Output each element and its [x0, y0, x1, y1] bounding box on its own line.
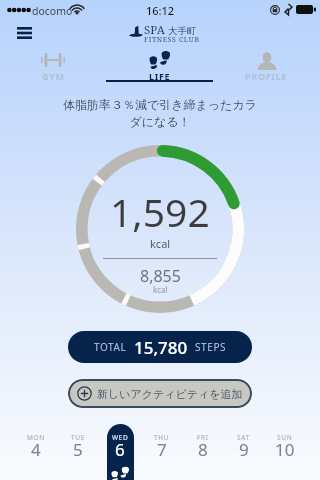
button[interactable]: SUN: [264, 424, 305, 480]
staticText: 7: [157, 438, 167, 461]
staticText: kcal: [150, 236, 171, 251]
button[interactable]: SAT: [223, 424, 264, 480]
staticText: THU: [154, 433, 170, 442]
button[interactable]: TUE: [57, 424, 99, 480]
staticText: GYM: [42, 70, 65, 82]
staticText: 4: [31, 438, 41, 461]
staticText: MON: [27, 433, 46, 442]
button[interactable]: MON: [15, 424, 57, 480]
button[interactable]: LIFE: [106, 46, 213, 82]
staticText: FITNESS CLUB: [144, 35, 200, 45]
button[interactable]: FRI: [182, 424, 223, 480]
staticText: FRI: [197, 433, 209, 442]
button[interactable]: GYM: [0, 46, 106, 82]
staticText: PROFILE: [245, 70, 288, 82]
staticText: docomo: [32, 4, 73, 18]
staticText: SUN: [277, 433, 293, 442]
staticText: kcal: [153, 284, 168, 295]
staticText: 8,855: [140, 265, 181, 287]
staticText: TOTAL: [94, 340, 127, 354]
button[interactable]: TOTAL: [68, 331, 252, 363]
staticText: STEPS: [195, 340, 227, 354]
staticText: 新しいアクティビティを追加: [97, 387, 243, 401]
staticText: 8: [198, 438, 208, 461]
staticText: WED: [112, 433, 129, 442]
staticText: 16:12: [146, 3, 175, 18]
button[interactable]: PROFILE: [213, 46, 320, 82]
staticText: TUE: [71, 433, 86, 442]
button[interactable]: WED: [99, 424, 141, 480]
staticText: 10: [275, 438, 295, 461]
staticText: SPA: [144, 22, 165, 38]
button[interactable]: THU: [141, 424, 182, 480]
button[interactable]: Menu: [10, 20, 38, 46]
staticText: LIFE: [149, 70, 171, 82]
staticText: SAT: [237, 433, 250, 442]
staticText: 体脂肪率３％減で引き締まったカラ ダになる！: [0, 97, 320, 129]
staticText: 9: [239, 438, 249, 461]
staticText: 1,592: [110, 185, 210, 238]
button[interactable]: 新しいアクティビティを追加: [68, 379, 252, 408]
staticText: 15,780: [134, 336, 188, 359]
staticText: 大手町: [168, 25, 197, 37]
staticText: 5: [73, 438, 83, 461]
staticText: 6: [115, 438, 125, 461]
